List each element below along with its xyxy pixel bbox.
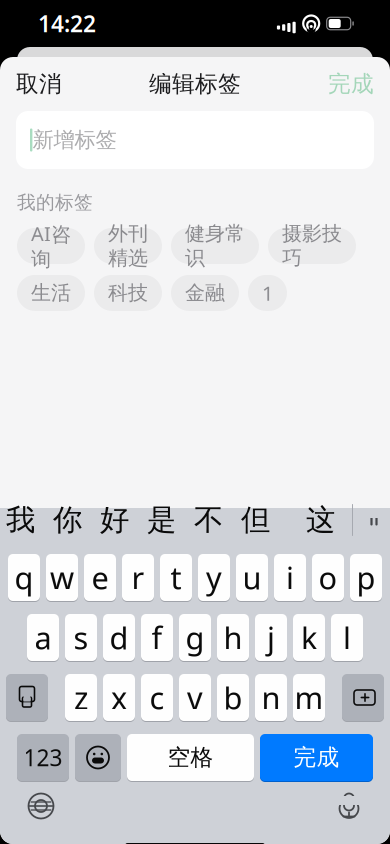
staticText: 我的标签: [17, 191, 93, 214]
button[interactable]: Delete: [342, 673, 384, 722]
staticText: b: [223, 677, 242, 718]
button[interactable]: m: [293, 673, 325, 722]
button[interactable]: 外刊精选: [94, 228, 162, 264]
staticText: q: [14, 557, 33, 598]
button[interactable]: AI咨询: [17, 228, 85, 264]
staticText: u: [242, 557, 261, 598]
button[interactable]: Emoji: [75, 733, 121, 782]
staticText: z: [74, 677, 88, 718]
button[interactable]: 新增标签: [16, 111, 374, 169]
button[interactable]: 不: [185, 498, 232, 542]
staticText: 编辑标签: [149, 70, 241, 98]
button[interactable]: i: [274, 553, 306, 602]
staticText: 我: [6, 502, 35, 538]
button[interactable]: 取消: [0, 60, 78, 108]
button[interactable]: 我: [0, 498, 44, 542]
button[interactable]: n: [255, 673, 287, 722]
staticText: o: [318, 557, 337, 598]
button[interactable]: t: [160, 553, 192, 602]
staticText: r: [131, 557, 144, 598]
staticText: 新增标签: [32, 127, 116, 153]
button[interactable]: 好: [91, 498, 138, 542]
staticText: x: [111, 677, 127, 718]
button[interactable]: y: [198, 553, 230, 602]
button[interactable]: 生活: [17, 275, 85, 311]
button[interactable]: 所以: [279, 498, 297, 542]
staticText: m: [294, 677, 323, 718]
button[interactable]: 但: [232, 498, 279, 542]
button[interactable]: z: [65, 673, 97, 722]
staticText: 健身常识: [185, 221, 245, 270]
button[interactable]: 你: [44, 498, 91, 542]
staticText: 完成: [328, 70, 374, 98]
button[interactable]: c: [141, 673, 173, 722]
button[interactable]: u: [236, 553, 268, 602]
staticText: 但: [241, 502, 270, 538]
staticText: j: [267, 617, 275, 658]
button[interactable]: Dictation: [322, 783, 376, 829]
staticText: 科技: [108, 281, 148, 305]
button[interactable]: 这: [297, 498, 344, 542]
button[interactable]: j: [255, 613, 287, 662]
button[interactable]: x: [103, 673, 135, 722]
staticText: 你: [53, 502, 82, 538]
button[interactable]: p: [350, 553, 382, 602]
button[interactable]: d: [103, 613, 135, 662]
button[interactable]: v: [179, 673, 211, 722]
staticText: e: [91, 557, 108, 598]
staticText: n: [261, 677, 280, 718]
staticText: s: [73, 617, 88, 658]
staticText: 这: [306, 502, 335, 538]
staticText: i: [286, 557, 294, 598]
staticText: w: [50, 557, 74, 598]
staticText: 123: [23, 742, 62, 772]
staticText: 空格: [167, 744, 213, 771]
button[interactable]: 金融: [171, 275, 239, 311]
staticText: 取消: [16, 70, 62, 98]
button[interactable]: h: [217, 613, 249, 662]
staticText: h: [223, 617, 242, 658]
staticText: a: [34, 617, 51, 658]
button[interactable]: q: [8, 553, 40, 602]
staticText: 是: [147, 502, 176, 538]
button[interactable]: 完成: [260, 733, 373, 782]
staticText: t: [170, 557, 181, 598]
staticText: 生活: [31, 281, 71, 305]
button[interactable]: b: [217, 673, 249, 722]
button[interactable]: a: [27, 613, 59, 662]
staticText: 不: [194, 502, 223, 538]
button[interactable]: Switch keyboard: [14, 783, 68, 829]
staticText: k: [301, 617, 317, 658]
staticText: f: [151, 617, 162, 658]
button[interactable]: 123: [17, 733, 69, 782]
staticText: 好: [100, 502, 129, 538]
button[interactable]: s: [65, 613, 97, 662]
button[interactable]: 完成: [312, 60, 390, 108]
staticText: 摄影技巧: [282, 221, 342, 270]
button[interactable]: Hide candidates: [353, 498, 390, 542]
button[interactable]: l: [331, 613, 363, 662]
staticText: AI咨询: [31, 220, 71, 271]
staticText: p: [356, 557, 375, 598]
button[interactable]: g: [179, 613, 211, 662]
button[interactable]: Shift: [6, 673, 48, 722]
button[interactable]: 空格: [127, 733, 254, 782]
button[interactable]: 科技: [94, 275, 162, 311]
staticText: l: [343, 617, 351, 658]
button[interactable]: o: [312, 553, 344, 602]
staticText: 14:22: [38, 8, 96, 38]
button[interactable]: w: [46, 553, 78, 602]
staticText: 外刊精选: [108, 221, 148, 270]
button[interactable]: 1: [248, 275, 287, 311]
button[interactable]: e: [84, 553, 116, 602]
staticText: c: [149, 677, 164, 718]
button[interactable]: 摄影技巧: [268, 228, 356, 264]
button[interactable]: r: [122, 553, 154, 602]
staticText: g: [185, 617, 204, 658]
staticText: 金融: [185, 281, 225, 305]
button[interactable]: f: [141, 613, 173, 662]
button[interactable]: k: [293, 613, 325, 662]
button[interactable]: 是: [138, 498, 185, 542]
staticText: v: [187, 677, 203, 718]
button[interactable]: 健身常识: [171, 228, 259, 264]
